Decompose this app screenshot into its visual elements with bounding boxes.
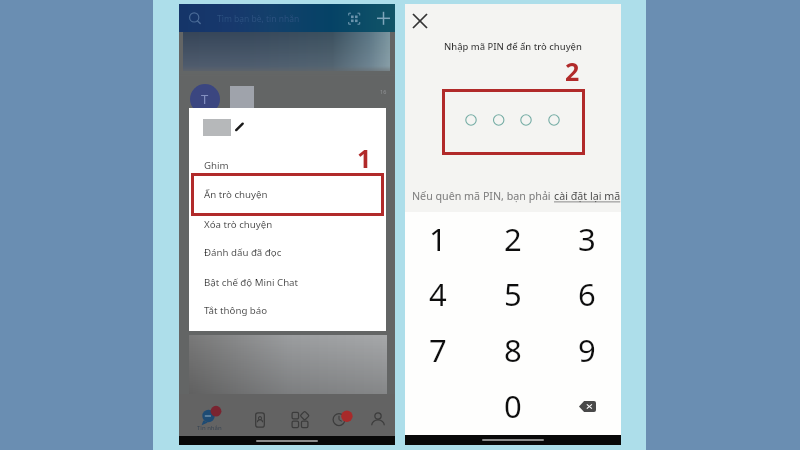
staticText: Nếu quên mã PIN, bạn phải [412, 189, 554, 204]
button[interactable]: 2 [479, 213, 547, 265]
button[interactable]: Timeline [327, 394, 351, 436]
button[interactable]: Backspace [553, 380, 621, 432]
button[interactable]: 5 [479, 268, 547, 320]
staticText: 1 [357, 141, 372, 169]
staticText: T [201, 90, 209, 108]
button[interactable]: 3 [553, 213, 621, 265]
staticText: 6 [578, 273, 596, 315]
button[interactable]: Close [408, 9, 432, 33]
button[interactable]: cài đặt lại mã [554, 189, 621, 204]
staticText: 4 [429, 273, 447, 315]
staticText: Tìm bạn bè, tin nhắn [217, 13, 300, 25]
staticText: Bật chế độ Mini Chat [204, 276, 299, 289]
button[interactable]: Profile [364, 394, 392, 436]
button[interactable]: Bật chế độ Mini Chat [189, 268, 386, 297]
staticText: Đánh dấu đã đọc [204, 246, 282, 259]
staticText: Nhập mã PIN để ẩn trò chuyện [444, 40, 582, 53]
staticText: 16 [380, 88, 387, 95]
button[interactable]: Xóa trò chuyện [189, 210, 386, 239]
button[interactable]: Ghim [189, 151, 386, 180]
button[interactable]: Apps grid [286, 394, 314, 436]
staticText: 2 [504, 218, 522, 260]
button[interactable]: Ấn trò chuyện [189, 180, 386, 209]
button[interactable]: Tin nhắn [188, 394, 230, 436]
button[interactable]: 6 [553, 268, 621, 320]
staticText: 7 [429, 329, 447, 371]
staticText: 3 [578, 218, 596, 260]
staticText: 0 [504, 385, 522, 427]
button[interactable]: 0 [479, 380, 547, 432]
staticText: Ghim [204, 159, 229, 172]
staticText: 9 [578, 329, 596, 371]
staticText: 5 [504, 273, 522, 315]
staticText: Tin nhắn [197, 424, 222, 432]
button[interactable]: 1 [404, 213, 472, 265]
button[interactable]: 8 [479, 324, 547, 376]
staticText: 2 [565, 54, 580, 82]
staticText: Ấn trò chuyện [204, 188, 268, 201]
button[interactable]: Đánh dấu đã đọc [189, 238, 386, 267]
staticText: 1 [429, 218, 447, 260]
button[interactable]: 9 [553, 324, 621, 376]
button[interactable]: Tắt thông báo [189, 296, 386, 325]
button[interactable]: 7 [404, 324, 472, 376]
staticText: Xóa trò chuyện [204, 218, 273, 231]
button[interactable]: 4 [404, 268, 472, 320]
staticText: 8 [504, 329, 522, 371]
button[interactable]: Contacts [246, 394, 274, 436]
staticText: Tắt thông báo [204, 304, 268, 317]
